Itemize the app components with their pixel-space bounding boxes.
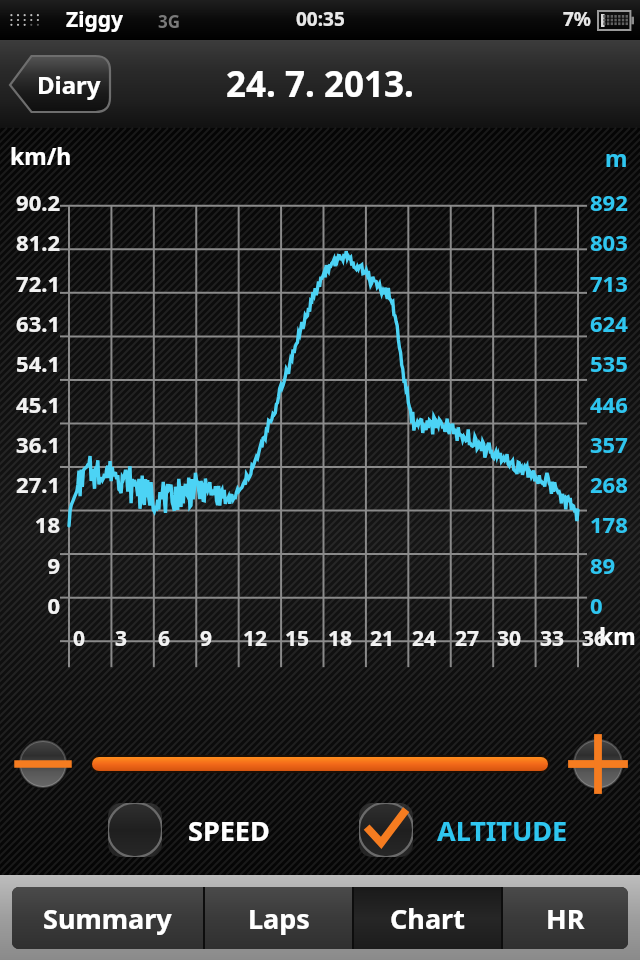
staticText: 713 [590, 268, 628, 298]
staticText: 9 [47, 550, 60, 580]
staticText: 18 [328, 624, 353, 653]
staticText: 12 [243, 624, 268, 653]
button[interactable] [90, 755, 550, 773]
staticText: 36 [582, 624, 607, 653]
staticText: 81.2 [16, 227, 60, 257]
staticText: Summary [43, 900, 172, 937]
button[interactable]: Summary [12, 887, 203, 949]
staticText: 36.1 [16, 429, 60, 459]
staticText: 15 [285, 624, 310, 653]
staticText: 27.1 [16, 469, 60, 499]
staticText: 3 [115, 624, 128, 653]
button[interactable]: Diary [8, 56, 110, 112]
staticText: 24. 7. 2013. [226, 60, 414, 108]
staticText: 63.1 [16, 308, 60, 338]
staticText: 89 [590, 550, 616, 580]
staticText: 892 [590, 187, 628, 217]
staticText: m [605, 142, 628, 173]
button[interactable]: HR [503, 887, 628, 949]
staticText: 54.1 [16, 348, 60, 378]
staticText: 3G [158, 10, 181, 33]
staticText: 72.1 [16, 268, 60, 298]
staticText: 0 [590, 590, 603, 620]
staticText: 00:35 [296, 6, 345, 32]
staticText: Ziggy [66, 5, 123, 34]
staticText: 18 [34, 509, 60, 539]
staticText: 33 [540, 624, 565, 653]
staticText: 90.2 [16, 187, 60, 217]
staticText: Chart [390, 900, 465, 937]
staticText: ALTITUDE [437, 812, 568, 849]
staticText: 446 [590, 389, 628, 419]
staticText: km/h [10, 140, 72, 171]
staticText: 268 [590, 469, 628, 499]
staticText: Laps [248, 900, 310, 937]
staticText: 9 [200, 624, 213, 653]
staticText: 7% [563, 6, 592, 32]
staticText: 45.1 [16, 389, 60, 419]
staticText: 30 [497, 624, 522, 653]
staticText: Diary [37, 68, 101, 101]
staticText: 21 [370, 624, 395, 653]
staticText: km [599, 620, 636, 651]
staticText: HR [546, 900, 585, 937]
staticText: 24 [412, 624, 437, 653]
button[interactable]: Zoom out [18, 739, 68, 789]
staticText: 803 [590, 227, 628, 257]
staticText: 178 [590, 509, 628, 539]
staticText: 535 [590, 348, 628, 378]
staticText: 6 [158, 624, 171, 653]
button[interactable]: Chart [354, 887, 501, 949]
button[interactable]: Zoom in [572, 738, 624, 790]
button[interactable]: ALTITUDE [359, 803, 568, 857]
staticText: 624 [590, 308, 628, 338]
button[interactable]: SPEED [108, 803, 270, 857]
staticText: 0 [73, 624, 86, 653]
staticText: 27 [455, 624, 480, 653]
staticText: 357 [590, 429, 628, 459]
staticText: 0 [47, 590, 60, 620]
staticText: SPEED [188, 812, 270, 849]
button[interactable]: Laps [205, 887, 352, 949]
